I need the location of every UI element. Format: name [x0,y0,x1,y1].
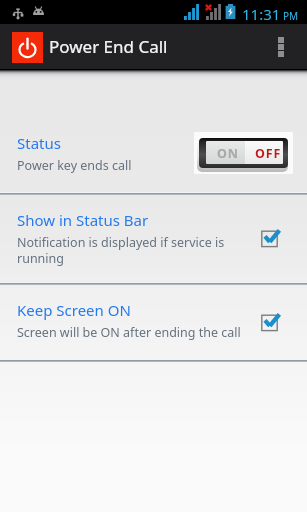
staticText: 11:31 [242,4,281,24]
staticText: Notification is displayed if service is … [17,234,225,266]
button[interactable]: Status toggle [194,132,296,178]
button[interactable]: Status [0,118,307,192]
staticText: Screen will be ON after ending the call [17,324,241,341]
button[interactable]: Checkbox [261,312,281,331]
button[interactable]: More options [263,24,298,69]
staticText: Show in Status Bar [17,210,149,230]
staticText: Power End Call [49,35,168,58]
button[interactable]: Keep Screen ON [0,285,307,359]
staticText: Power key ends call [17,157,132,174]
staticText: OFF [255,145,282,162]
staticText: PM [283,9,299,23]
button[interactable]: Show in Status Bar [0,195,307,282]
staticText: Keep Screen ON [17,300,131,320]
staticText: ON [217,145,239,162]
staticText: Status [17,133,61,153]
button[interactable]: Checkbox [261,228,281,247]
